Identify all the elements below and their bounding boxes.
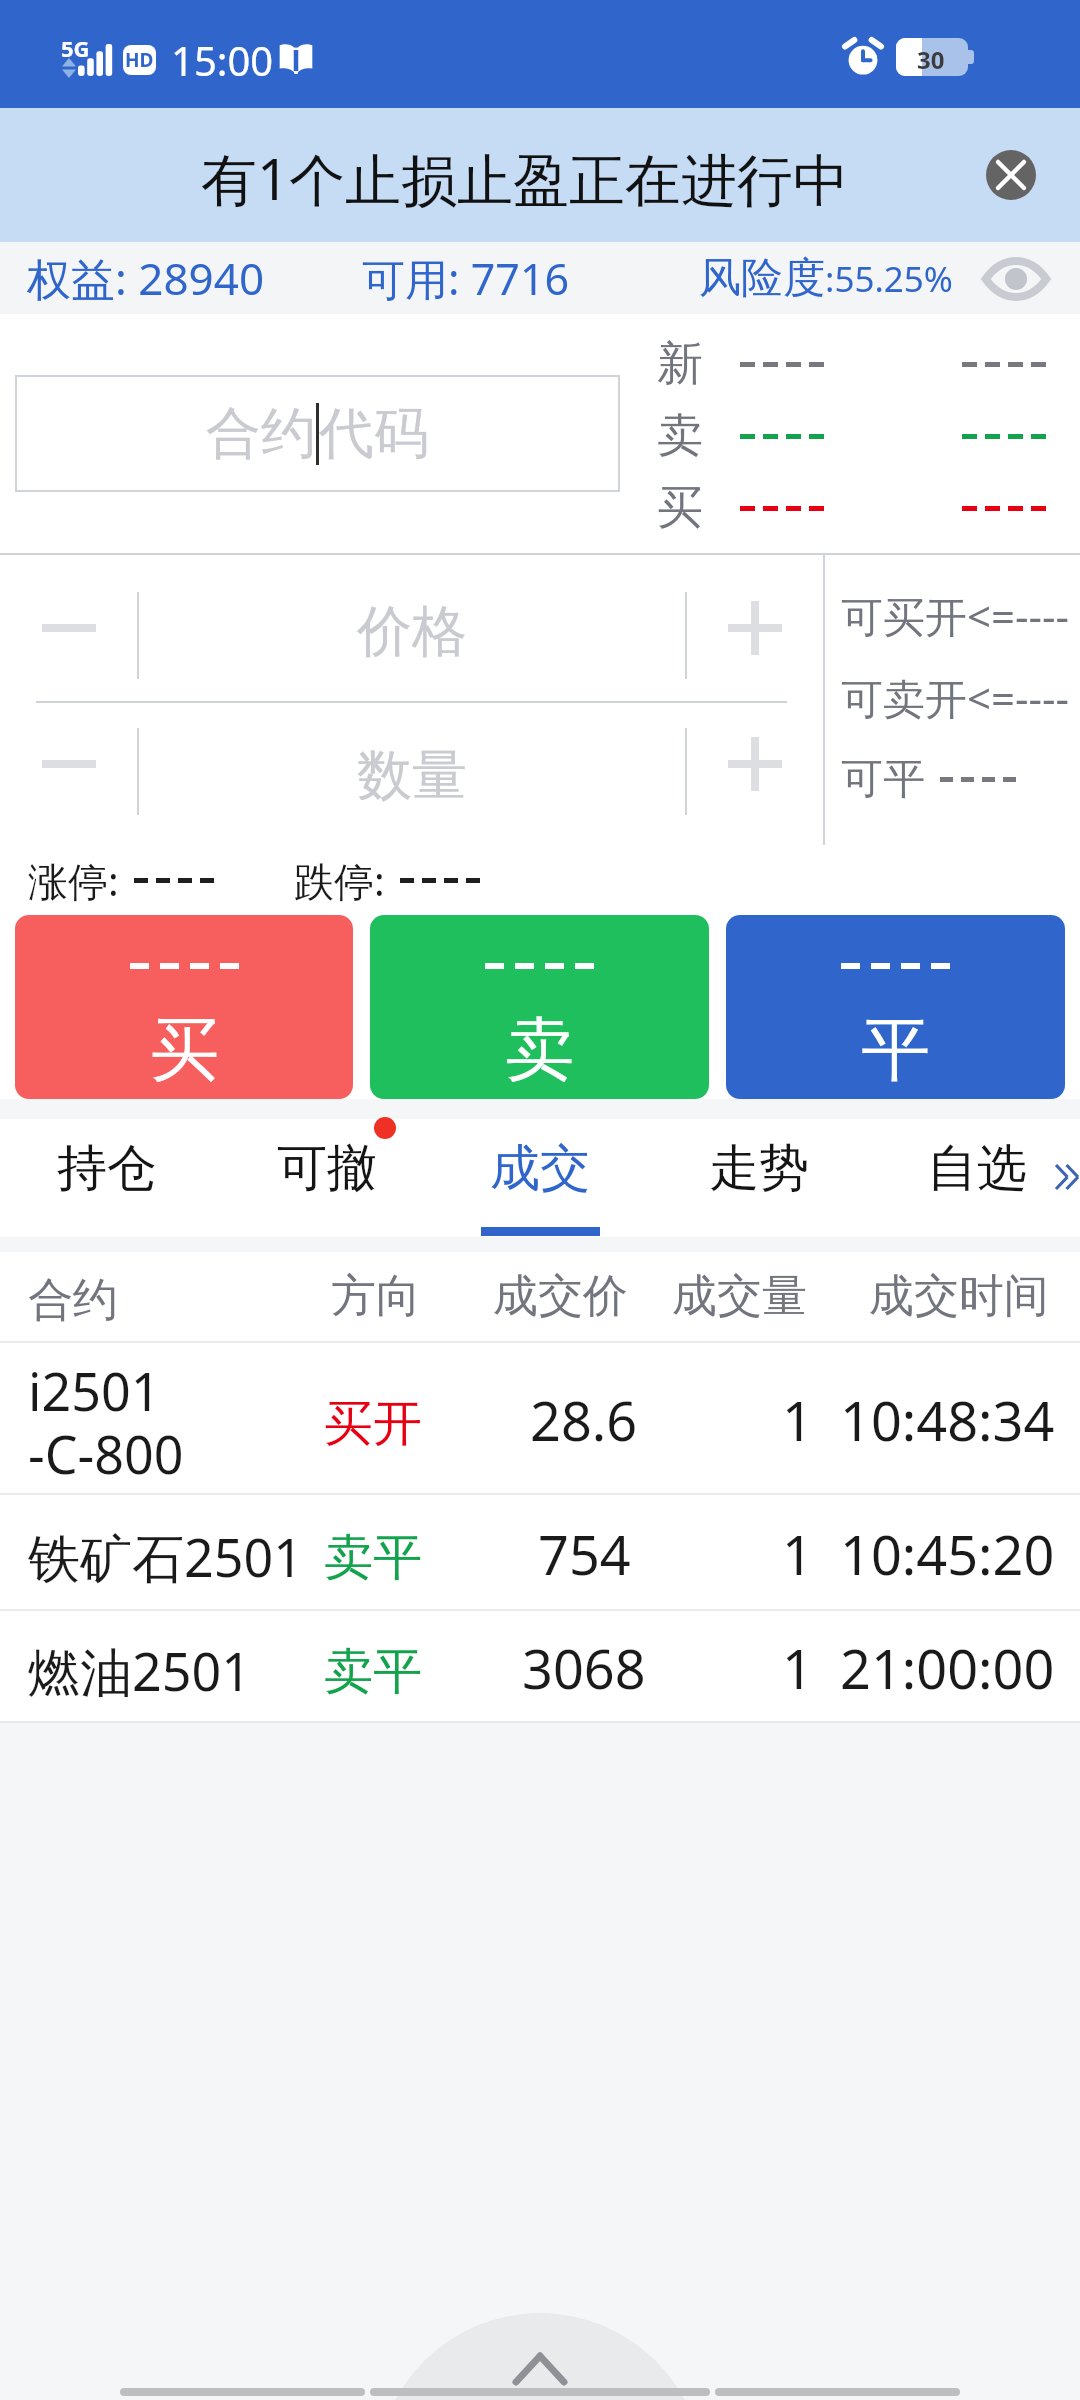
button[interactable]: 合约	[15, 375, 620, 492]
staticText: 买	[657, 479, 703, 537]
staticText: 10:48:34	[840, 1383, 1055, 1457]
button[interactable]: 价格	[139, 555, 685, 701]
staticText: 卖平	[324, 1527, 422, 1589]
staticText: 1	[782, 1383, 813, 1457]
staticText: :55.25%	[825, 255, 953, 303]
staticText: 卖平	[324, 1641, 422, 1703]
button[interactable]: 数量	[139, 703, 685, 845]
staticText: 权益: 28940	[27, 248, 265, 308]
button[interactable]: 增加	[687, 555, 823, 701]
staticText: 可卖开<=----	[841, 669, 1070, 726]
button[interactable]: 平	[726, 915, 1065, 1099]
button[interactable]: 买	[15, 915, 353, 1099]
staticText: 合约	[28, 1272, 118, 1329]
staticText: 涨停:	[28, 853, 119, 908]
staticText: 3068	[522, 1631, 646, 1705]
button[interactable]: 卖	[370, 915, 709, 1099]
staticText: 合约	[206, 399, 316, 468]
staticText: 可用: 7716	[362, 249, 570, 308]
staticText: 可买开<=----	[841, 587, 1070, 644]
staticText: 卖	[657, 407, 703, 465]
staticText: 成交时间	[869, 1268, 1049, 1325]
staticText: 30	[917, 43, 945, 76]
button[interactable]: 走势	[655, 1119, 863, 1237]
staticText: 成交	[490, 1137, 590, 1200]
staticText: 铁矿石2501	[28, 1521, 303, 1592]
staticText: 可撤	[277, 1137, 377, 1200]
staticText: 买开	[324, 1393, 422, 1455]
staticText: HD	[125, 47, 154, 73]
staticText: 买	[150, 1007, 219, 1094]
staticText: 21:00:00	[840, 1631, 1055, 1705]
button[interactable]: 减少	[0, 555, 137, 701]
button[interactable]: 更多标签	[1020, 1120, 1080, 1237]
button[interactable]: 增加	[687, 703, 823, 845]
button[interactable]: 持仓	[3, 1119, 211, 1237]
staticText: 方向	[331, 1268, 421, 1325]
staticText: 平	[861, 1007, 930, 1094]
button[interactable]: 展开面板	[376, 2313, 704, 2400]
button[interactable]: 显示或隐藏资金	[983, 255, 1049, 303]
staticText: 风险度	[699, 252, 825, 305]
button[interactable]: 减少	[0, 703, 137, 845]
button[interactable]: 成交	[436, 1119, 644, 1237]
staticText: 15:00	[171, 33, 274, 87]
button[interactable]: 燃油2501	[0, 1611, 1080, 1721]
staticText: 可平	[841, 753, 925, 806]
button[interactable]: 可撤	[223, 1119, 431, 1237]
staticText: 10:45:20	[840, 1517, 1055, 1591]
button[interactable]: 自选	[873, 1119, 1080, 1237]
staticText: 跌停:	[294, 853, 385, 908]
staticText: 卖	[505, 1007, 574, 1094]
staticText: 价格	[357, 597, 467, 666]
staticText: 1	[782, 1631, 813, 1705]
button[interactable]: 权益: 28940	[0, 242, 1080, 314]
staticText: 持仓	[57, 1137, 157, 1200]
staticText: 新	[657, 335, 703, 393]
staticText: 燃油2501	[28, 1635, 251, 1706]
staticText: 有1个止损止盈正在进行中	[201, 140, 850, 216]
staticText: 成交价	[493, 1268, 628, 1325]
staticText: 5G	[61, 33, 90, 63]
button[interactable]: i2501 -C-800	[0, 1343, 1080, 1493]
staticText: 自选	[927, 1137, 1027, 1200]
staticText: i2501 -C-800	[28, 1355, 184, 1489]
staticText: 代码	[319, 399, 429, 468]
button[interactable]: 关闭	[986, 150, 1036, 200]
staticText: 成交量	[672, 1268, 807, 1325]
staticText: 数量	[357, 741, 467, 810]
staticText: 走势	[709, 1137, 809, 1200]
staticText: 754	[538, 1517, 631, 1591]
staticText: 28.6	[530, 1383, 638, 1457]
button[interactable]: 铁矿石2501	[0, 1495, 1080, 1609]
staticText: 1	[782, 1517, 813, 1591]
